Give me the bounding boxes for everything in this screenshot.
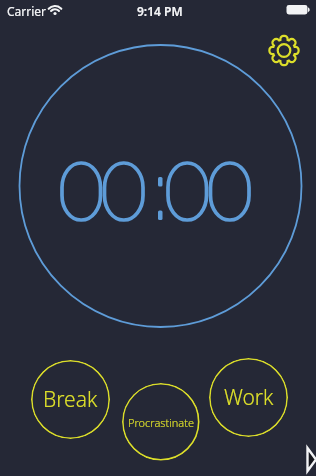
button[interactable]: Procrastinate <box>122 383 200 461</box>
staticText: Break <box>43 385 98 414</box>
button[interactable]: Work <box>209 358 288 437</box>
button[interactable] <box>266 32 302 68</box>
button[interactable]: Break <box>31 360 110 439</box>
staticText: Carrier <box>7 3 47 19</box>
staticText: Procrastinate <box>128 415 195 430</box>
staticText: Work <box>224 383 274 412</box>
staticText: 9:14 PM <box>137 3 183 19</box>
